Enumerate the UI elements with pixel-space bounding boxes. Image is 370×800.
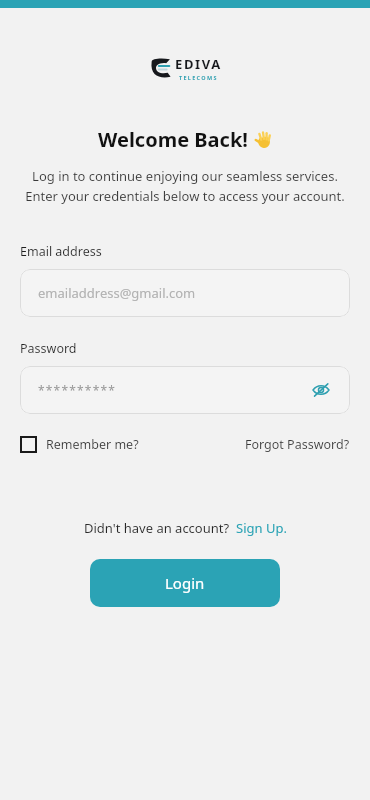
button[interactable]: Login — [90, 559, 280, 607]
staticText: Log in to continue enjoying our seamless… — [24, 167, 346, 205]
button[interactable]: emailaddress@gmail.com — [20, 269, 350, 317]
button[interactable]: Forgot Password? — [245, 436, 350, 453]
staticText: Forgot Password? — [245, 436, 350, 453]
button[interactable]: Sign Up. — [236, 519, 287, 537]
staticText: EDIVA — [175, 55, 222, 73]
staticText: emailaddress@gmail.com — [38, 284, 196, 302]
staticText: Login — [165, 573, 205, 593]
staticText: Remember me? — [46, 436, 139, 453]
staticText: Didn't have an account? — [84, 519, 230, 537]
staticText: Welcome Back! — [98, 126, 248, 153]
staticText: Email address — [20, 243, 102, 260]
button[interactable]: Remember me? — [20, 436, 139, 453]
button[interactable]: ********** — [20, 366, 350, 414]
staticText: ********** — [38, 382, 117, 398]
button[interactable]: Show password — [306, 375, 336, 405]
staticText: TELECOMS — [179, 74, 218, 81]
staticText: Sign Up. — [236, 519, 287, 537]
staticText: Password — [20, 340, 77, 357]
